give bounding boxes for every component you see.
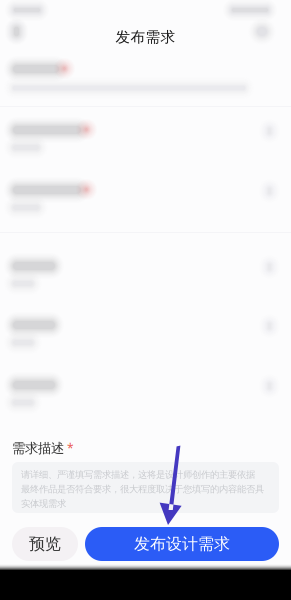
staticText: 发布设计需求 (134, 534, 230, 554)
staticText: 发布需求 (115, 28, 175, 46)
staticText: 请详细、严谨填写需求描述，这将是设计师创作的主要依据 (21, 469, 255, 480)
button[interactable]: 预览 (12, 527, 78, 561)
button[interactable]: More (0, 0, 291, 34)
staticText: * (67, 440, 74, 456)
button[interactable]: 发布设计需求 (85, 527, 279, 561)
staticText: 最终作品是否符合要求，很大程度取决于您填写的内容能否具 (21, 483, 264, 495)
staticText: 预览 (29, 534, 61, 554)
staticText: 需求描述 (12, 440, 64, 456)
button[interactable]: Back (0, 0, 40, 34)
staticText: 实体现需求 (21, 498, 66, 509)
